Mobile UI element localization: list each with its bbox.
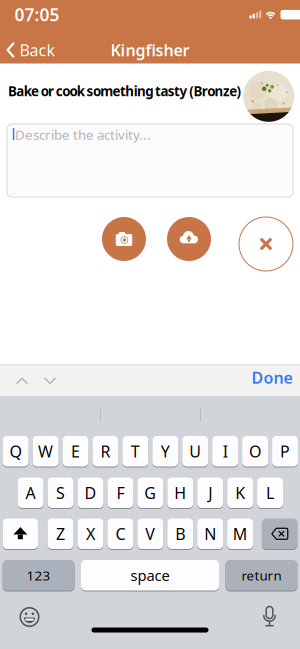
button[interactable]: W xyxy=(32,435,58,467)
staticText: Back xyxy=(19,39,55,61)
button[interactable]: Q xyxy=(3,435,29,467)
staticText: J xyxy=(208,482,212,503)
button[interactable]: 123 xyxy=(3,559,75,591)
staticText: space xyxy=(130,565,169,585)
staticText: Bake or cook something tasty (Bronze) xyxy=(8,82,242,100)
staticText: W xyxy=(38,441,53,462)
button[interactable]: space xyxy=(81,559,219,591)
staticText: return xyxy=(241,566,281,584)
staticText: H xyxy=(174,482,186,503)
button[interactable]: G xyxy=(137,477,163,508)
staticText: T xyxy=(131,441,140,462)
button[interactable]: Next field xyxy=(39,371,61,391)
staticText: K xyxy=(235,482,245,503)
staticText: N xyxy=(204,523,216,544)
staticText: G xyxy=(144,482,156,503)
button[interactable]: I xyxy=(212,435,238,467)
staticText: P xyxy=(280,441,290,462)
staticText: R xyxy=(100,441,110,462)
staticText: L xyxy=(266,482,274,503)
staticText: O xyxy=(249,441,261,462)
button[interactable]: B xyxy=(167,518,193,549)
staticText: C xyxy=(115,523,125,544)
button[interactable]: Y xyxy=(152,435,178,467)
button[interactable]: V xyxy=(137,518,163,549)
button[interactable]: Describe the activity... xyxy=(7,124,293,197)
staticText: A xyxy=(26,482,36,503)
button[interactable]: R xyxy=(92,435,118,467)
button[interactable]: Upload photo xyxy=(167,217,211,261)
button[interactable]: O xyxy=(242,435,268,467)
button[interactable]: S xyxy=(47,477,73,508)
staticText: V xyxy=(145,523,155,544)
button[interactable]: U xyxy=(182,435,208,467)
button[interactable]: Z xyxy=(47,518,73,549)
button[interactable]: A xyxy=(18,477,44,508)
staticText: 07:05 xyxy=(14,3,59,26)
button[interactable]: Cancel xyxy=(239,217,293,271)
button[interactable]: Emoji xyxy=(14,602,44,632)
button[interactable]: C xyxy=(107,518,133,549)
staticText: Done xyxy=(251,367,292,388)
button[interactable]: J xyxy=(197,477,223,508)
staticText: 123 xyxy=(27,566,51,584)
button[interactable]: Dictation xyxy=(256,603,282,629)
button[interactable]: return xyxy=(225,559,297,591)
button[interactable]: M xyxy=(227,518,253,549)
button[interactable]: E xyxy=(62,435,88,467)
button[interactable]: X xyxy=(77,518,103,549)
staticText: Kingfisher xyxy=(110,39,189,61)
button[interactable]: Delete xyxy=(262,518,297,549)
staticText: E xyxy=(71,441,80,462)
staticText: M xyxy=(233,523,248,544)
staticText: F xyxy=(116,482,124,503)
staticText: U xyxy=(189,441,201,462)
staticText: B xyxy=(175,523,185,544)
staticText: X xyxy=(86,523,95,544)
button[interactable]: N xyxy=(197,518,223,549)
staticText: Q xyxy=(10,441,22,462)
button[interactable]: Shift xyxy=(3,518,38,549)
button[interactable]: Previous field xyxy=(11,371,33,391)
button[interactable]: H xyxy=(167,477,193,508)
staticText: I xyxy=(223,441,228,462)
button[interactable]: Done xyxy=(251,367,292,388)
staticText: D xyxy=(84,482,96,503)
staticText: S xyxy=(56,482,65,503)
button[interactable]: P xyxy=(272,435,298,467)
button[interactable]: L xyxy=(257,477,283,508)
button[interactable]: K xyxy=(227,477,253,508)
staticText: Y xyxy=(161,441,170,462)
button[interactable]: Take photo xyxy=(102,217,146,261)
staticText: Describe the activity... xyxy=(15,126,151,143)
button[interactable]: Back xyxy=(6,39,55,61)
button[interactable]: T xyxy=(122,435,148,467)
button[interactable]: F xyxy=(107,477,133,508)
staticText: Z xyxy=(56,523,65,544)
button[interactable]: D xyxy=(77,477,103,508)
